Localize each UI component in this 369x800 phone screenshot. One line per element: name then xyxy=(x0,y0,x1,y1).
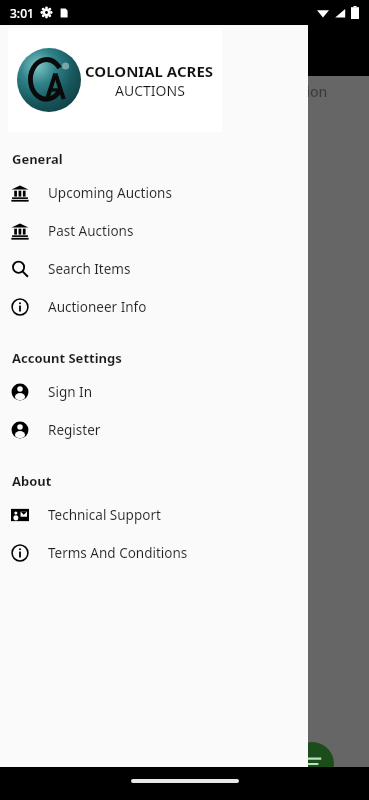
staticText: Auction xyxy=(276,82,328,101)
button[interactable]: Upcoming Auctions xyxy=(0,174,308,212)
staticText: About xyxy=(12,472,52,490)
staticText: Register xyxy=(48,421,101,439)
button[interactable]: Search Items xyxy=(0,250,308,288)
staticText: General xyxy=(12,150,63,168)
staticText: Upcoming Auctions xyxy=(48,184,172,202)
staticText: Technical Support xyxy=(48,506,161,524)
staticText: Sign In xyxy=(48,383,92,401)
button[interactable]: Register xyxy=(0,411,308,449)
button[interactable]: Auctioneer Info xyxy=(0,288,308,326)
staticText: Auctioneer Info xyxy=(48,298,147,316)
button[interactable]: Past Auctions xyxy=(0,212,308,250)
staticText: Search Items xyxy=(48,260,131,278)
button[interactable]: Filter xyxy=(290,742,334,786)
staticText: AUCTIONS xyxy=(115,81,185,100)
button[interactable]: Technical Support xyxy=(0,496,308,534)
staticText: 3:01 xyxy=(10,5,34,21)
staticText: Past Auctions xyxy=(48,222,134,240)
staticText: Terms And Conditions xyxy=(48,544,188,562)
staticText: COLONIAL ACRES xyxy=(85,61,214,81)
button[interactable]: Sign In xyxy=(0,373,308,411)
button[interactable]: Terms And Conditions xyxy=(0,534,308,572)
staticText: Account Settings xyxy=(12,349,122,367)
